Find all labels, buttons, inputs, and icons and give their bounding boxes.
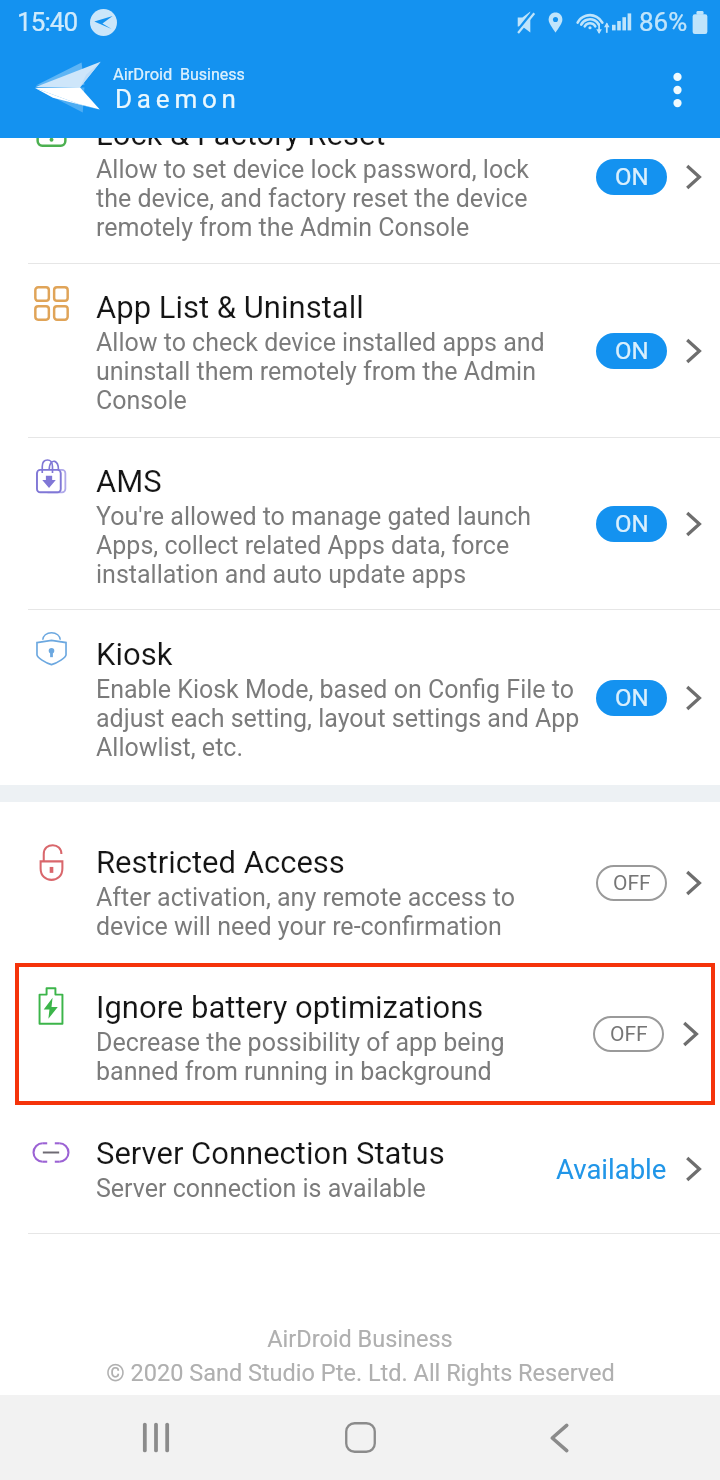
- staticText: 86%: [639, 7, 688, 37]
- button[interactable]: Kiosk: [0, 610, 720, 785]
- staticText: After activation, any remote access to d…: [96, 883, 515, 941]
- staticText: Allow to set device lock password, lock …: [96, 155, 529, 242]
- staticText: AMS: [96, 463, 162, 499]
- staticText: AirDroid: [113, 65, 173, 84]
- staticText: Decrease the possibility of app being ba…: [96, 1028, 505, 1086]
- staticText: Allow to check device installed apps and…: [96, 328, 545, 415]
- staticText: ON: [615, 337, 649, 365]
- button[interactable]: Recents: [96, 1395, 216, 1480]
- staticText: AirDroid Business: [267, 1325, 453, 1353]
- staticText: Available: [556, 1153, 667, 1185]
- staticText: App List & Uninstall: [96, 289, 364, 325]
- staticText: Server Connection Status: [96, 1135, 445, 1171]
- staticText: Restricted Access: [96, 844, 345, 880]
- button[interactable]: Restricted Access: [0, 802, 720, 963]
- staticText: OFF: [613, 871, 651, 896]
- staticText: Ignore battery optimizations: [96, 989, 484, 1025]
- staticText: Server connection is available: [96, 1174, 426, 1203]
- staticText: 15:40: [17, 7, 78, 37]
- staticText: Lock & Factory Reset: [96, 116, 386, 152]
- button[interactable]: Home: [300, 1395, 420, 1480]
- staticText: OFF: [610, 1022, 648, 1047]
- button[interactable]: More options: [645, 58, 709, 122]
- staticText: Enable Kiosk Mode, based on Config File …: [96, 675, 580, 762]
- staticText: Business: [180, 65, 245, 84]
- button[interactable]: Ignore battery optimizations: [15, 963, 715, 1105]
- staticText: ON: [615, 684, 649, 712]
- button[interactable]: Back: [499, 1395, 619, 1480]
- staticText: You're allowed to manage gated launch Ap…: [96, 502, 531, 589]
- button[interactable]: App List & Uninstall: [0, 264, 720, 437]
- staticText: ON: [615, 510, 649, 538]
- button[interactable]: AMS: [0, 438, 720, 609]
- staticText: © 2020 Sand Studio Pte. Ltd. All Rights …: [106, 1359, 615, 1387]
- button[interactable]: Server Connection Status: [0, 1105, 720, 1233]
- staticText: Daemon: [115, 84, 241, 114]
- staticText: ON: [615, 163, 649, 191]
- staticText: Kiosk: [96, 636, 173, 672]
